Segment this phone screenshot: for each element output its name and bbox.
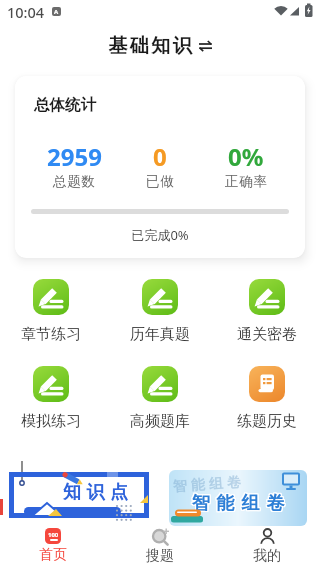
staticText: 搜题 bbox=[146, 547, 174, 565]
staticText: 已做 bbox=[146, 173, 175, 190]
staticText: 10:04 bbox=[7, 2, 45, 22]
staticText: A bbox=[54, 8, 59, 16]
button[interactable]: 知识点 bbox=[0, 458, 152, 528]
staticText: 高频题库 bbox=[122, 412, 198, 431]
staticText: 智能组卷 bbox=[188, 493, 288, 516]
staticText: 智能组卷 bbox=[189, 492, 289, 515]
button[interactable]: 基础知识 bbox=[107, 34, 213, 58]
staticText: 模拟练习 bbox=[13, 412, 89, 431]
staticText: 练题历史 bbox=[229, 412, 305, 431]
button[interactable]: 我的 bbox=[213, 527, 320, 568]
button[interactable]: 通关密卷 bbox=[229, 276, 305, 348]
staticText: 0 bbox=[153, 140, 167, 173]
staticText: 智能组卷 bbox=[187, 492, 287, 515]
staticText: 已完成0% bbox=[15, 226, 305, 244]
button[interactable]: 练题历史 bbox=[229, 363, 305, 435]
staticText: 智能组卷 bbox=[170, 473, 244, 496]
button[interactable]: 100 bbox=[0, 527, 106, 568]
button[interactable]: 历年真题 bbox=[122, 276, 198, 348]
staticText: 知识点 bbox=[63, 481, 134, 504]
staticText: 100 bbox=[48, 531, 59, 539]
staticText: 智能组卷 bbox=[187, 493, 287, 516]
button[interactable]: 搜题 bbox=[106, 527, 213, 568]
button[interactable]: 章节练习 bbox=[13, 276, 89, 348]
staticText: 正确率 bbox=[225, 173, 268, 190]
staticText: 历年真题 bbox=[122, 325, 198, 344]
staticText: 首页 bbox=[39, 546, 67, 564]
button[interactable]: 智能组卷 bbox=[169, 470, 307, 526]
staticText: 智能组卷 bbox=[189, 491, 289, 514]
staticText: 智能组卷 bbox=[189, 493, 289, 516]
staticText: 智能组卷 bbox=[188, 492, 288, 515]
staticText: 基础知识 bbox=[107, 34, 193, 58]
button[interactable]: 总体统计 bbox=[15, 76, 305, 258]
staticText: 总题数 bbox=[53, 173, 96, 190]
button[interactable]: 高频题库 bbox=[122, 363, 198, 435]
staticText: 智能组卷 bbox=[188, 491, 288, 514]
staticText: 通关密卷 bbox=[229, 325, 305, 344]
staticText: 章节练习 bbox=[13, 325, 89, 344]
staticText: 总体统计 bbox=[34, 95, 96, 115]
staticText: 我的 bbox=[253, 547, 281, 565]
staticText: 智能组卷 bbox=[187, 491, 287, 514]
staticText: 2959 bbox=[47, 140, 102, 173]
staticText: 0% bbox=[228, 140, 264, 173]
button[interactable]: 模拟练习 bbox=[13, 363, 89, 435]
